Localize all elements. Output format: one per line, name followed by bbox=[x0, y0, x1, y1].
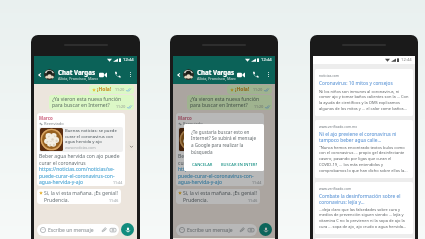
staticText: Escribe un mensaje bbox=[48, 227, 94, 234]
other: Camera bbox=[110, 227, 116, 233]
button[interactable]: Call bbox=[251, 70, 259, 78]
button[interactable]: Sí, la vi esta mañana. ¡Es genial! Prude… bbox=[37, 189, 121, 204]
staticText: https://noticias.com/noticias/se-puede-c… bbox=[178, 166, 262, 185]
other: Camera bbox=[248, 227, 254, 233]
button[interactable]: Emoji bbox=[37, 224, 119, 236]
button[interactable]: Marco bbox=[37, 113, 125, 186]
staticText: Marco bbox=[39, 115, 53, 121]
staticText: Reenviado bbox=[44, 121, 64, 126]
staticText: 11:44 bbox=[252, 180, 262, 185]
button[interactable]: Marco bbox=[176, 113, 264, 186]
button[interactable]: Voice message bbox=[259, 223, 272, 236]
staticText: Ni el ajo previene el coronavirus ni tam… bbox=[319, 131, 409, 143]
button[interactable]: Call bbox=[113, 70, 121, 78]
staticText: "Nunca hemos encontrado textos bulos com… bbox=[319, 145, 409, 174]
button[interactable]: ¡Hola! bbox=[89, 85, 134, 94]
staticText: Chat Vargas bbox=[197, 68, 235, 76]
staticText: Sí, la vi esta mañana. ¡Es genial! Prude… bbox=[183, 190, 258, 203]
button[interactable]: BUSCAR EN INTERNET bbox=[220, 161, 258, 168]
staticText: www.verificado.com.mx bbox=[319, 124, 358, 129]
staticText: CANCELAR bbox=[192, 162, 213, 167]
button[interactable]: Video call bbox=[98, 70, 107, 79]
button[interactable]: ¿Ya vieron esta nueva función para busca… bbox=[49, 95, 134, 110]
button[interactable]: noticias.com bbox=[315, 69, 413, 116]
staticText: https://noticias.com/noticias/se-puede-c… bbox=[39, 166, 123, 185]
staticText: ¡Hola! bbox=[97, 86, 112, 93]
staticText: Chat Vargas bbox=[58, 68, 96, 76]
staticText: Buenas noticias: se puede curar el coron… bbox=[204, 128, 261, 144]
staticText: www.noticias.com bbox=[65, 145, 96, 150]
staticText: 11:46 bbox=[109, 198, 119, 203]
button[interactable]: Sí, la vi esta mañana. ¡Es genial! Prude… bbox=[176, 189, 260, 204]
button[interactable]: Scroll to bottom bbox=[126, 141, 136, 151]
button[interactable]: Back bbox=[175, 71, 182, 78]
staticText: Beber agua hervida con ajo puede curar e… bbox=[39, 153, 123, 166]
staticText: ...deja claro que las falsedades sobre c… bbox=[319, 207, 409, 230]
staticText: Alicia, Francisco, Marco,... bbox=[197, 76, 236, 81]
staticText: 11:20 bbox=[253, 87, 263, 92]
staticText: www.verificado.com bbox=[319, 186, 352, 191]
other: Emoji bbox=[179, 227, 185, 233]
staticText: Escribe un mensaje bbox=[187, 227, 233, 234]
staticText: Marco bbox=[178, 115, 192, 121]
button[interactable]: CANCELAR bbox=[191, 161, 214, 168]
staticText: BUSCAR EN INTERNET bbox=[221, 162, 257, 167]
staticText: ¿Ya vieron esta nueva función para busca… bbox=[190, 96, 270, 109]
staticText: 11:20 bbox=[115, 87, 125, 92]
staticText: 11:20 bbox=[254, 104, 264, 109]
button[interactable]: ¡Hola! bbox=[227, 85, 272, 94]
button[interactable]: Voice message bbox=[121, 223, 134, 236]
button[interactable]: More options bbox=[126, 70, 134, 78]
staticText: 12:44 bbox=[123, 57, 134, 63]
staticText: Coronavirus: 10 mitos y consejos falsos.… bbox=[319, 80, 409, 87]
staticText: Reenviado bbox=[183, 121, 203, 126]
other: Attach bbox=[239, 227, 245, 233]
staticText: Buenas noticias: se puede curar el coron… bbox=[65, 128, 122, 144]
other: Emoji bbox=[40, 227, 46, 233]
button[interactable]: More options bbox=[264, 70, 272, 78]
button[interactable]: Back bbox=[36, 71, 43, 78]
button[interactable]: Emoji bbox=[176, 224, 257, 236]
staticText: ¿Te gustaría buscar esto en Internet? Se… bbox=[191, 129, 258, 156]
staticText: Sí, la vi esta mañana. ¡Es genial! Prude… bbox=[44, 190, 119, 203]
staticText: Beber agua hervida con ajo puede curar e… bbox=[178, 153, 262, 166]
staticText: Combate la desinformación sobre el coron… bbox=[319, 193, 409, 205]
button[interactable]: Video call bbox=[236, 70, 245, 79]
staticText: 11:46 bbox=[248, 198, 258, 203]
staticText: www.noticias.com bbox=[204, 145, 235, 150]
button[interactable]: www.verificado.com bbox=[315, 182, 413, 234]
staticText: 12:44 bbox=[401, 57, 412, 63]
staticText: Ni los niños son inmunes al coronavirus,… bbox=[319, 89, 409, 112]
staticText: noticias.com bbox=[319, 73, 340, 78]
staticText: Alicia, Francisco, Marco,... bbox=[58, 76, 98, 81]
staticText: ¿Ya vieron esta nueva función para busca… bbox=[52, 96, 132, 109]
staticText: 11:44 bbox=[113, 180, 123, 185]
staticText: ¡Hola! bbox=[235, 86, 250, 93]
other: Attach bbox=[101, 227, 107, 233]
staticText: 11:20 bbox=[116, 104, 126, 109]
staticText: 12:44 bbox=[261, 57, 272, 63]
button[interactable]: www.verificado.com.mx bbox=[315, 120, 413, 178]
button[interactable]: ¿Ya vieron esta nueva función para busca… bbox=[187, 95, 272, 110]
